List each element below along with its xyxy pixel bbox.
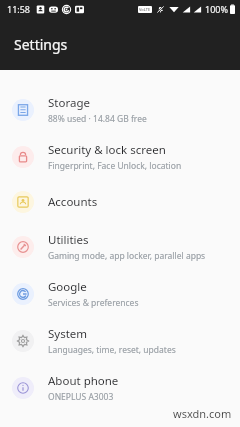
other: Utilities <box>17 241 29 253</box>
staticText: 11:58 <box>7 3 31 15</box>
button[interactable]: Utilities <box>0 223 240 270</box>
staticText: VoLTE <box>139 7 151 12</box>
staticText: Storage <box>48 95 90 111</box>
other: Google <box>17 288 29 300</box>
staticText: Fingerprint, Face Unlock, location <box>48 160 182 172</box>
staticText: wsxdn.com <box>173 406 232 421</box>
button[interactable]: Google <box>0 270 240 317</box>
staticText: 100% <box>205 3 228 15</box>
staticText: Accounts <box>48 194 98 210</box>
other: Storage <box>17 104 29 116</box>
other: About phone <box>17 382 29 394</box>
staticText: Security & lock screen <box>48 142 166 158</box>
button[interactable]: System <box>0 317 240 364</box>
staticText: Google <box>48 279 87 295</box>
other: System <box>17 335 29 347</box>
staticText: Gaming mode, app locker, parallel apps <box>48 250 206 262</box>
button[interactable]: Security and lock screen <box>0 133 240 180</box>
staticText: 88% used · 14.84 GB free <box>48 113 147 125</box>
staticText: ONEPLUS A3003 <box>48 391 114 403</box>
staticText: Settings <box>14 35 68 54</box>
staticText: Services & preferences <box>48 297 139 309</box>
button[interactable]: Storage <box>0 86 240 133</box>
button[interactable]: Accounts <box>0 180 240 223</box>
staticText: Languages, time, reset, updates <box>48 344 176 356</box>
other: Accounts <box>17 196 29 208</box>
staticText: Utilities <box>48 232 89 248</box>
staticText: About phone <box>48 373 119 389</box>
other: Security and lock screen <box>17 151 29 163</box>
staticText: System <box>48 326 88 342</box>
button[interactable]: About phone <box>0 364 240 411</box>
